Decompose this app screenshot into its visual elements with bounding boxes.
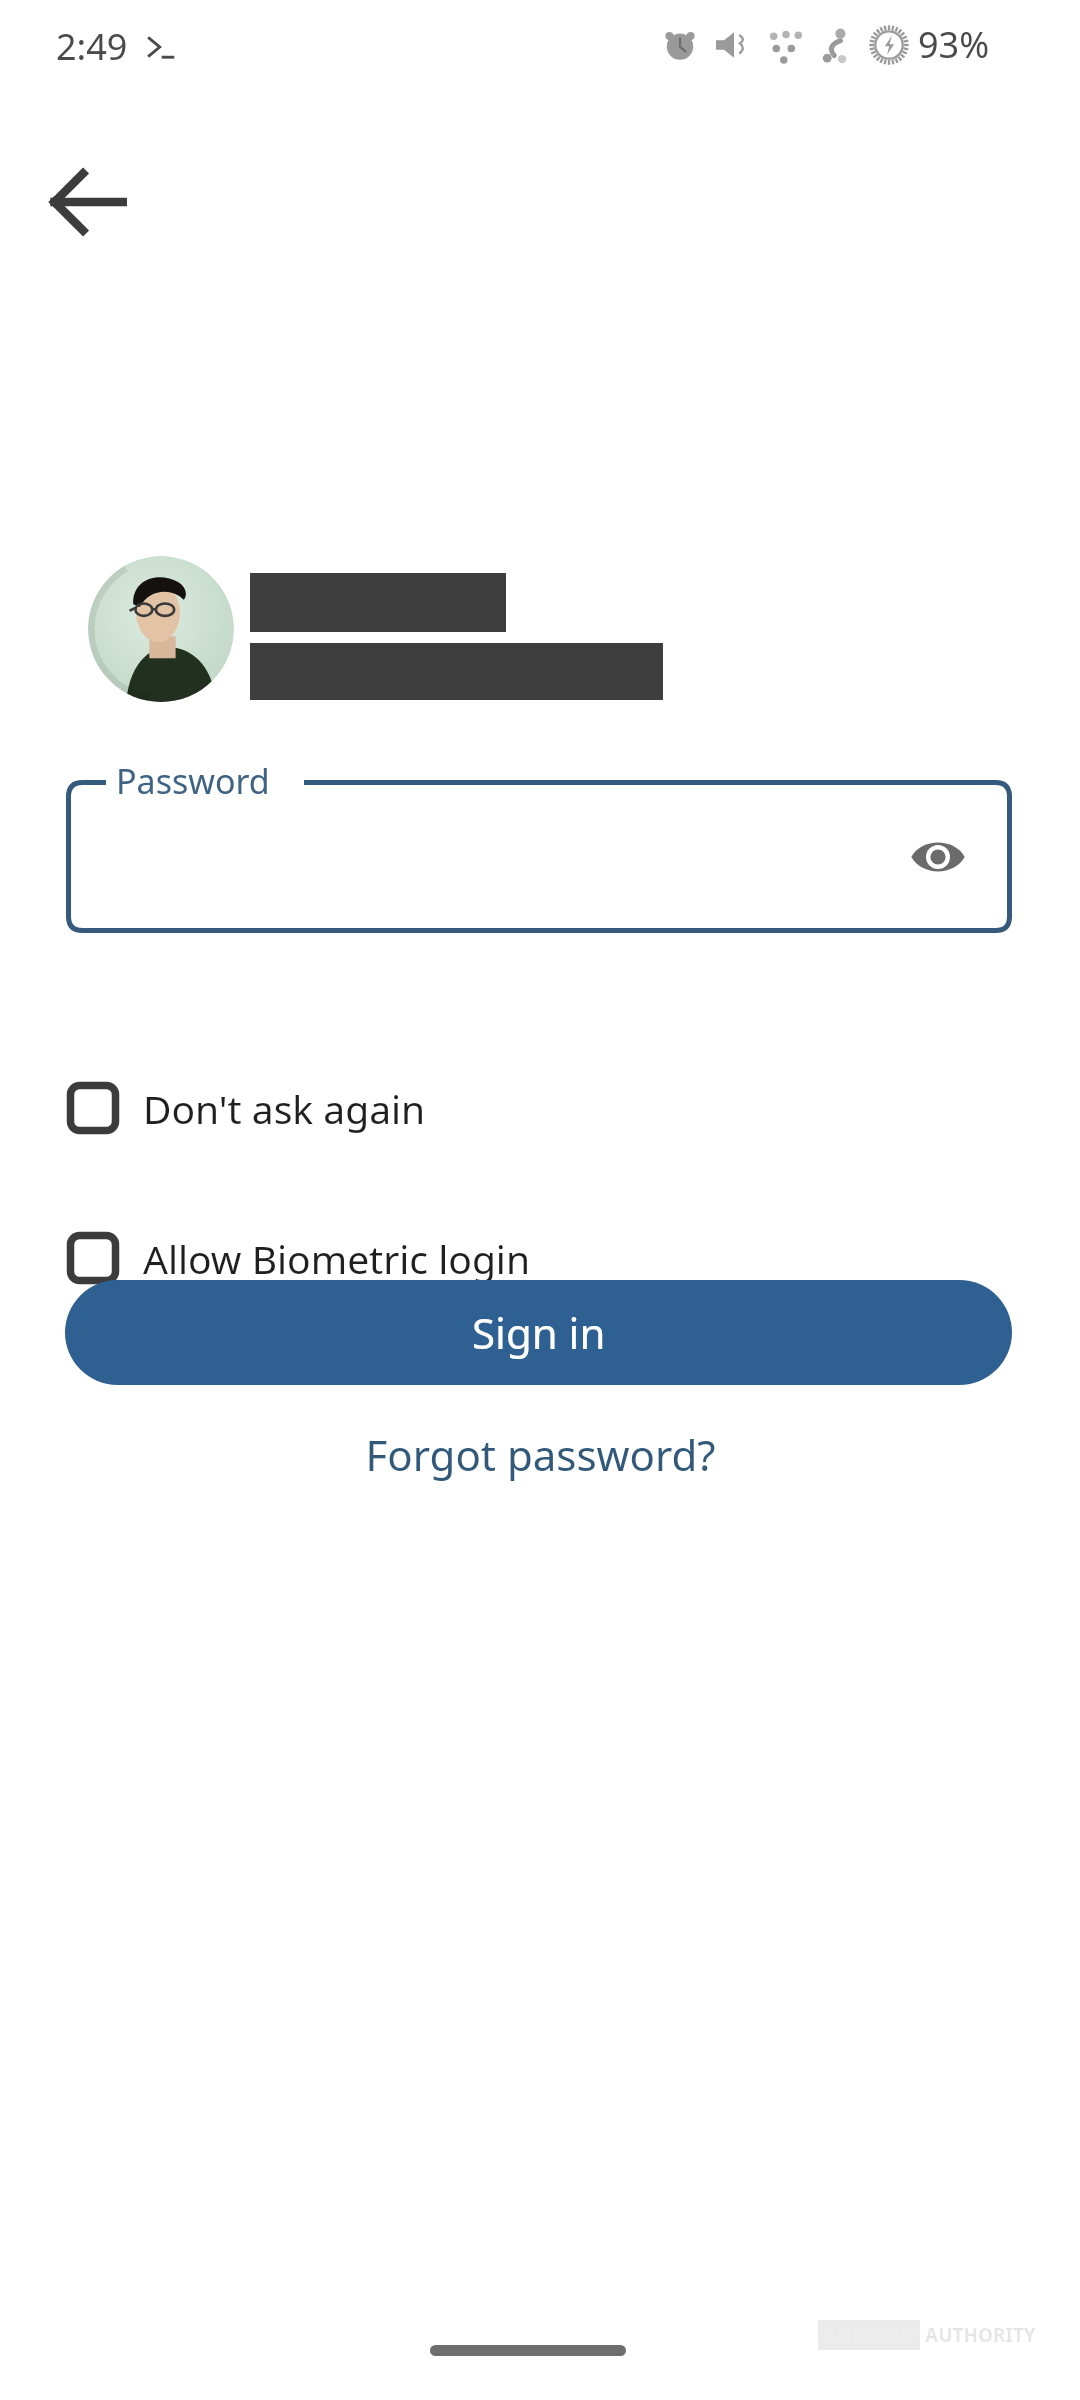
button[interactable]: Allow Biometric login xyxy=(66,1219,766,1297)
staticText: Don't ask again xyxy=(143,1082,426,1135)
button[interactable]: Back xyxy=(26,140,150,264)
button[interactable]: Show password xyxy=(900,819,976,895)
button[interactable]: Forgot password? xyxy=(347,1416,734,1493)
staticText: Password xyxy=(116,758,270,804)
staticText: Forgot password? xyxy=(365,1426,716,1483)
staticText: 93% xyxy=(918,20,990,69)
staticText: Sign in xyxy=(472,1304,606,1361)
staticText: 2:49 xyxy=(56,22,128,71)
button[interactable]: Password xyxy=(66,780,1012,933)
button[interactable]: Sign in xyxy=(65,1280,1012,1385)
button[interactable]: Don't ask again xyxy=(66,1069,766,1147)
button[interactable]: Profile photo xyxy=(88,556,234,702)
staticText: Allow Biometric login xyxy=(143,1232,531,1285)
staticText: AUTHORITY xyxy=(925,2322,1036,2348)
